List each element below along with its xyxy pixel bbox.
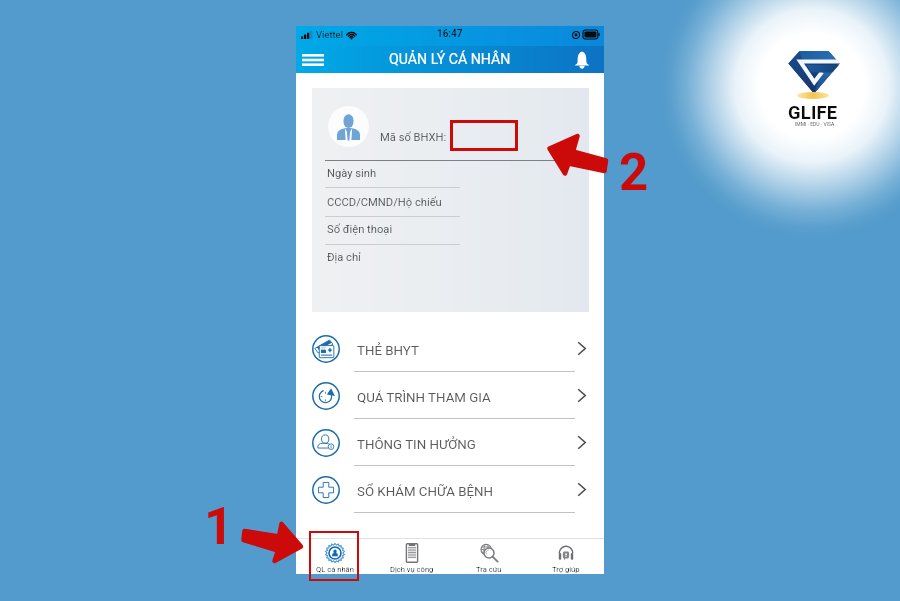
button[interactable]: SỔ KHÁM CHỮA BỆNH	[296, 466, 604, 513]
staticText: Trợ giúp	[552, 565, 580, 574]
staticText: Tra cứu	[476, 565, 502, 574]
button[interactable]: Tra cứu	[450, 539, 527, 574]
staticText: QUẢN LÝ CÁ NHÂN	[389, 51, 511, 68]
staticText: CCCD/CMND/Hộ chiếu	[327, 196, 442, 209]
staticText: GLIFE	[788, 102, 838, 124]
staticText: Mã số BHXH:	[380, 131, 447, 144]
staticText: THÔNG TIN HƯỞNG	[357, 437, 476, 453]
button[interactable]: Trợ giúp	[527, 539, 604, 574]
button[interactable]: QL cá nhân	[296, 539, 373, 574]
staticText: Viettel	[316, 29, 343, 40]
button[interactable]: THÔNG TIN HƯỞNG	[296, 419, 604, 466]
button[interactable]: Notifications	[571, 49, 593, 71]
staticText: QL cá nhân	[316, 565, 354, 574]
staticText: IMMI · EDU · VISA	[795, 121, 835, 127]
staticText: Địa chỉ	[327, 251, 361, 264]
staticText: Ngày sinh	[327, 167, 377, 180]
staticText: Số điện thoại	[327, 223, 393, 236]
staticText: 1	[204, 497, 234, 557]
staticText: THẺ BHYT	[357, 343, 419, 359]
staticText: Dịch vụ công	[390, 565, 434, 574]
staticText: SỔ KHÁM CHỮA BỆNH	[357, 484, 494, 500]
staticText: 16:47	[437, 28, 463, 40]
staticText: QUÁ TRÌNH THAM GIA	[357, 390, 491, 406]
button[interactable]: Open navigation menu	[300, 47, 326, 73]
button[interactable]: Dịch vụ công	[373, 539, 450, 574]
button[interactable]: THẺ BHYT	[296, 325, 604, 372]
staticText: 2	[619, 143, 649, 203]
button[interactable]: QUÁ TRÌNH THAM GIA	[296, 372, 604, 419]
